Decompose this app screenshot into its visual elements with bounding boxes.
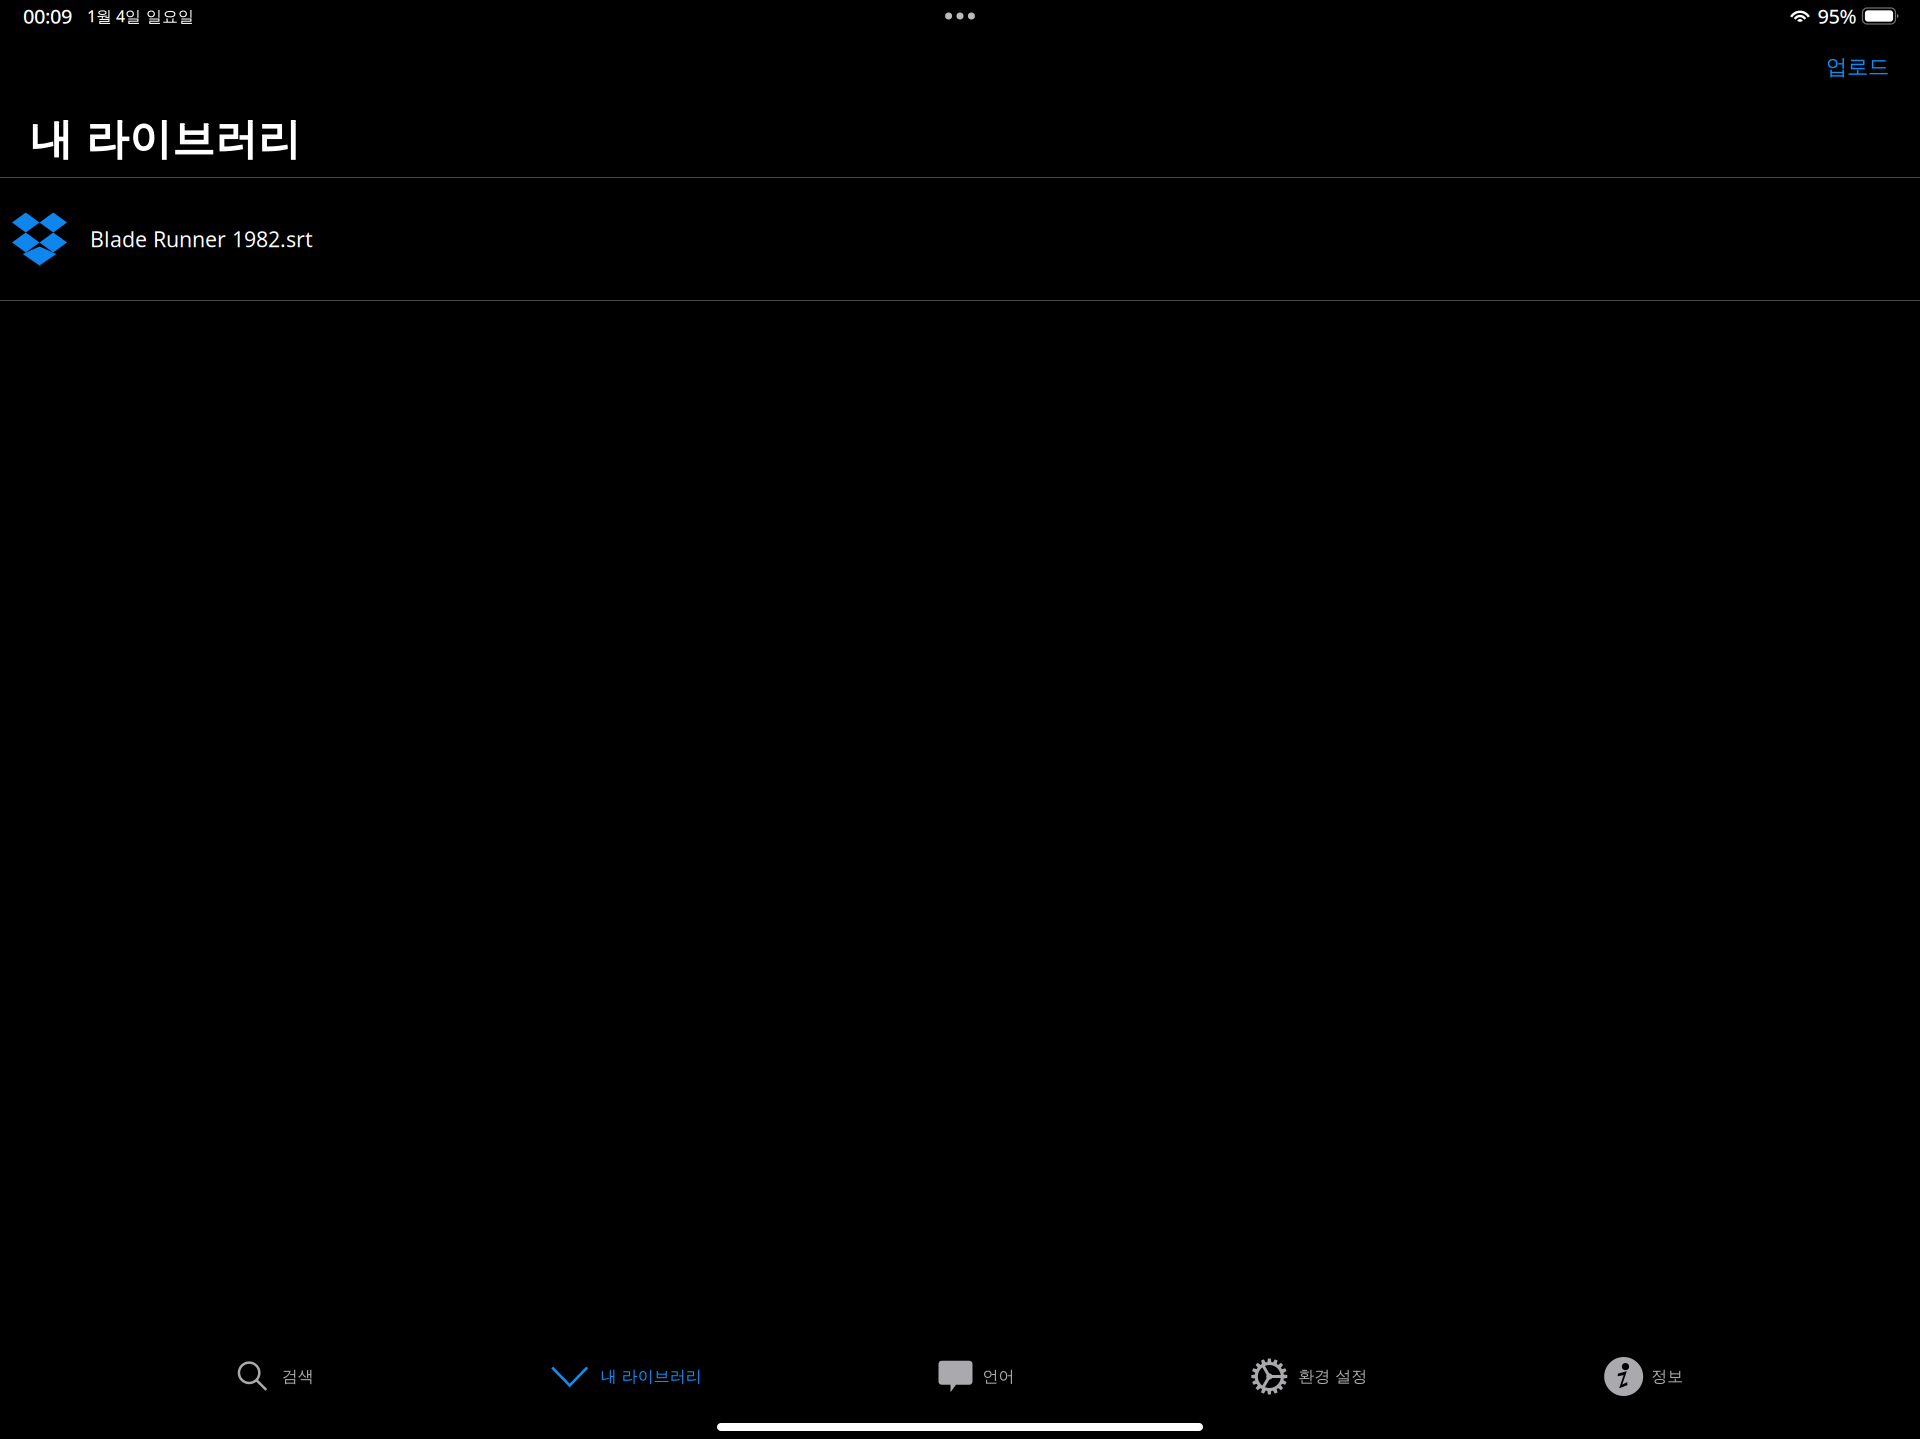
button[interactable]: 검색 xyxy=(237,1349,314,1403)
button[interactable]: 내 라이브러리 xyxy=(551,1355,702,1398)
button[interactable]: 업로드 xyxy=(1816,46,1899,88)
staticText: 환경 설정 xyxy=(1298,1367,1367,1386)
staticText: 정보 xyxy=(1651,1367,1683,1386)
staticText: 1월 4일 일요일 xyxy=(87,5,194,27)
button[interactable]: Multitasking Controls xyxy=(931,3,989,29)
staticText: Blade Runner 1982.srt xyxy=(90,225,313,253)
button[interactable]: Blade Runner 1982.srt xyxy=(0,178,1920,300)
staticText: 언어 xyxy=(982,1367,1014,1386)
staticText: 내 라이브러리 xyxy=(30,113,301,166)
staticText: 95% xyxy=(1817,3,1856,29)
button[interactable]: 언어 xyxy=(938,1350,1014,1403)
staticText: 업로드 xyxy=(1826,54,1889,80)
staticText: 00:09 xyxy=(23,3,72,29)
button[interactable]: 환경 설정 xyxy=(1251,1347,1367,1405)
staticText: 검색 xyxy=(282,1367,314,1386)
staticText: 내 라이브러리 xyxy=(601,1367,702,1386)
button[interactable]: 정보 xyxy=(1604,1346,1683,1407)
